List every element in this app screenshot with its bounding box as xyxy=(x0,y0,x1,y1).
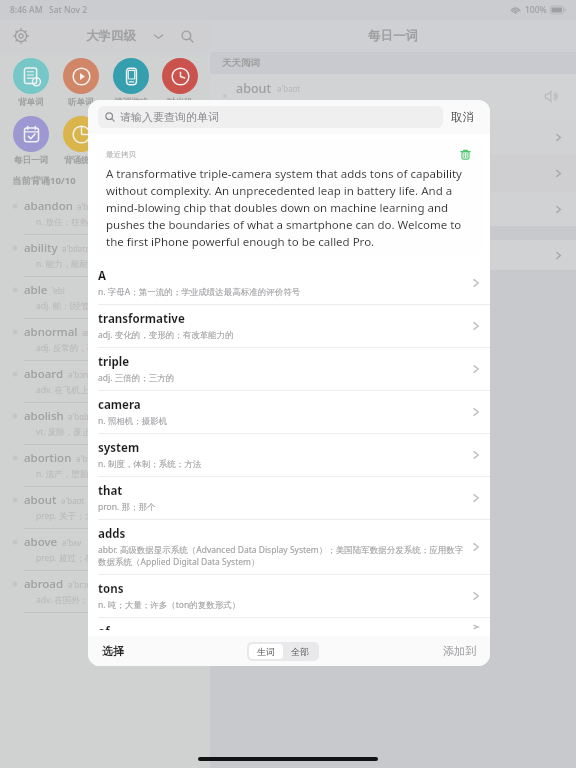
staticText: that xyxy=(98,483,123,499)
staticText: transformative xyxy=(98,311,185,327)
staticText: aboard xyxy=(24,366,64,382)
staticText: camera xyxy=(98,397,141,413)
staticText: of xyxy=(98,624,110,630)
button[interactable]: triple xyxy=(88,348,490,391)
button[interactable]: Settings xyxy=(10,25,32,47)
staticText: n. 照相机；摄影机 xyxy=(98,415,168,427)
staticText: abnormal xyxy=(24,324,78,340)
staticText: system xyxy=(98,440,140,456)
button[interactable]: 取消 xyxy=(443,106,482,128)
button[interactable]: Search xyxy=(176,25,198,47)
button[interactable]: abnormal xyxy=(0,319,210,361)
button[interactable]: 背诵统计 xyxy=(56,114,106,168)
button[interactable]: tons xyxy=(88,575,490,618)
button[interactable]: Expand xyxy=(148,26,168,46)
staticText: ə'bændən xyxy=(77,201,115,212)
staticText: 每日一词 xyxy=(14,155,48,166)
button[interactable]: abolish xyxy=(0,403,210,445)
staticText: ə'bɪlətɪ xyxy=(62,243,88,254)
staticText: 背诵统计 xyxy=(64,155,98,166)
button[interactable]: 最近拷贝 xyxy=(96,139,482,257)
staticText: abolish xyxy=(24,408,64,424)
staticText: 当前背诵10/10 xyxy=(12,174,76,187)
staticText: 取消 xyxy=(451,110,474,124)
staticText: adj. 三倍的；三方的 xyxy=(98,372,175,384)
staticText: adj. 反常的，不规则的 xyxy=(36,342,121,354)
button[interactable]: 背单词 xyxy=(6,56,56,110)
button[interactable]: aboard xyxy=(0,361,210,403)
staticText: ə'baʊt xyxy=(61,495,85,506)
staticText: 背单词 xyxy=(18,97,44,108)
staticText: 时光机 xyxy=(167,97,193,108)
button[interactable]: 选择 xyxy=(100,640,126,662)
staticText: above xyxy=(24,534,58,550)
button[interactable]: abandon xyxy=(0,193,210,235)
staticText: 听单词 xyxy=(68,97,94,108)
staticText: prep. 关于；大约 xyxy=(236,100,306,112)
staticText: A xyxy=(98,268,106,284)
staticText: 选择 xyxy=(102,644,124,658)
button[interactable]: system xyxy=(88,434,490,477)
staticText: adds xyxy=(98,526,126,542)
button[interactable]: A xyxy=(88,262,490,305)
button[interactable]: abroad xyxy=(0,571,210,613)
staticText: adv. 在国外；到海外 xyxy=(36,594,114,606)
staticText: ə'bɔrd xyxy=(68,369,92,380)
staticText: 大学四级 xyxy=(86,28,136,44)
staticText: 添加到 xyxy=(443,644,476,658)
staticText: ə'baʊt xyxy=(277,83,301,94)
staticText: n. 能力，能耐；才能 xyxy=(36,258,114,270)
staticText: about xyxy=(24,492,57,508)
staticText: prep. 关于；大约 xyxy=(36,510,102,522)
staticText: ə'bɔrʃən xyxy=(76,453,106,464)
staticText: 最近拷贝 xyxy=(106,150,136,159)
staticText: n. 吨；大量；许多（ton的复数形式） xyxy=(98,599,241,611)
staticText: abandon xyxy=(24,198,73,214)
button[interactable]: Delete recent copy xyxy=(458,147,472,161)
button[interactable]: 生词 xyxy=(249,644,283,659)
staticText: n. 放任；狂热 xyxy=(36,216,89,228)
staticText: prep. 超过；在…… xyxy=(36,552,107,564)
staticText: able xyxy=(24,282,48,298)
staticText: abbr. 高级数据显示系统（Advanced Data Display Sys… xyxy=(98,544,466,568)
staticText: 生词 xyxy=(257,646,275,657)
staticText: pron. 那；那个 xyxy=(98,501,156,513)
button[interactable]: ability xyxy=(0,235,210,277)
button[interactable]: able xyxy=(0,277,210,319)
staticText: 请输入要查询的单词 xyxy=(120,110,219,124)
staticText: A transformative triple-camera system th… xyxy=(106,166,472,249)
staticText: n. 制度，体制；系统；方法 xyxy=(98,458,202,470)
button[interactable]: 听单词 xyxy=(56,56,106,110)
button[interactable]: about xyxy=(210,74,576,120)
button[interactable]: 全部 xyxy=(283,644,317,659)
staticText: 'ebl xyxy=(52,285,65,296)
staticText: 100% xyxy=(525,4,547,16)
staticText: ə'bʌv xyxy=(62,537,82,548)
button[interactable]: transformative xyxy=(88,305,490,348)
staticText: n. 字母A；第一流的；学业成绩达最高标准的评价符号 xyxy=(98,286,301,298)
staticText: adj. 能；[经管] 有能力的 xyxy=(36,300,129,312)
button[interactable]: above xyxy=(0,529,210,571)
button[interactable]: 添加到 xyxy=(441,640,478,662)
staticText: ability xyxy=(24,240,58,256)
button[interactable]: Play pronunciation xyxy=(540,85,562,107)
staticText: Sat Nov 2 xyxy=(49,4,88,16)
staticText: æb'nɔːml xyxy=(82,327,117,338)
staticText: about xyxy=(236,80,272,97)
staticText: 天天阅词 xyxy=(222,57,260,69)
button[interactable]: adds xyxy=(88,520,490,575)
button[interactable]: abortion xyxy=(0,445,210,487)
staticText: 8:46 AM xyxy=(10,4,43,16)
button[interactable]: camera xyxy=(88,391,490,434)
button[interactable]: about xyxy=(0,487,210,529)
staticText: abortion xyxy=(24,450,72,466)
staticText: tons xyxy=(98,581,124,597)
staticText: abroad xyxy=(24,576,64,592)
button[interactable]: 槽词游戏 xyxy=(106,56,156,110)
staticText: 每日一词 xyxy=(368,28,418,44)
button[interactable]: 请输入要查询的单词 xyxy=(98,106,443,128)
button[interactable]: 每日一词 xyxy=(6,114,56,168)
button[interactable]: 时光机 xyxy=(156,56,204,110)
button[interactable]: that xyxy=(88,477,490,520)
button[interactable]: of xyxy=(88,618,490,636)
